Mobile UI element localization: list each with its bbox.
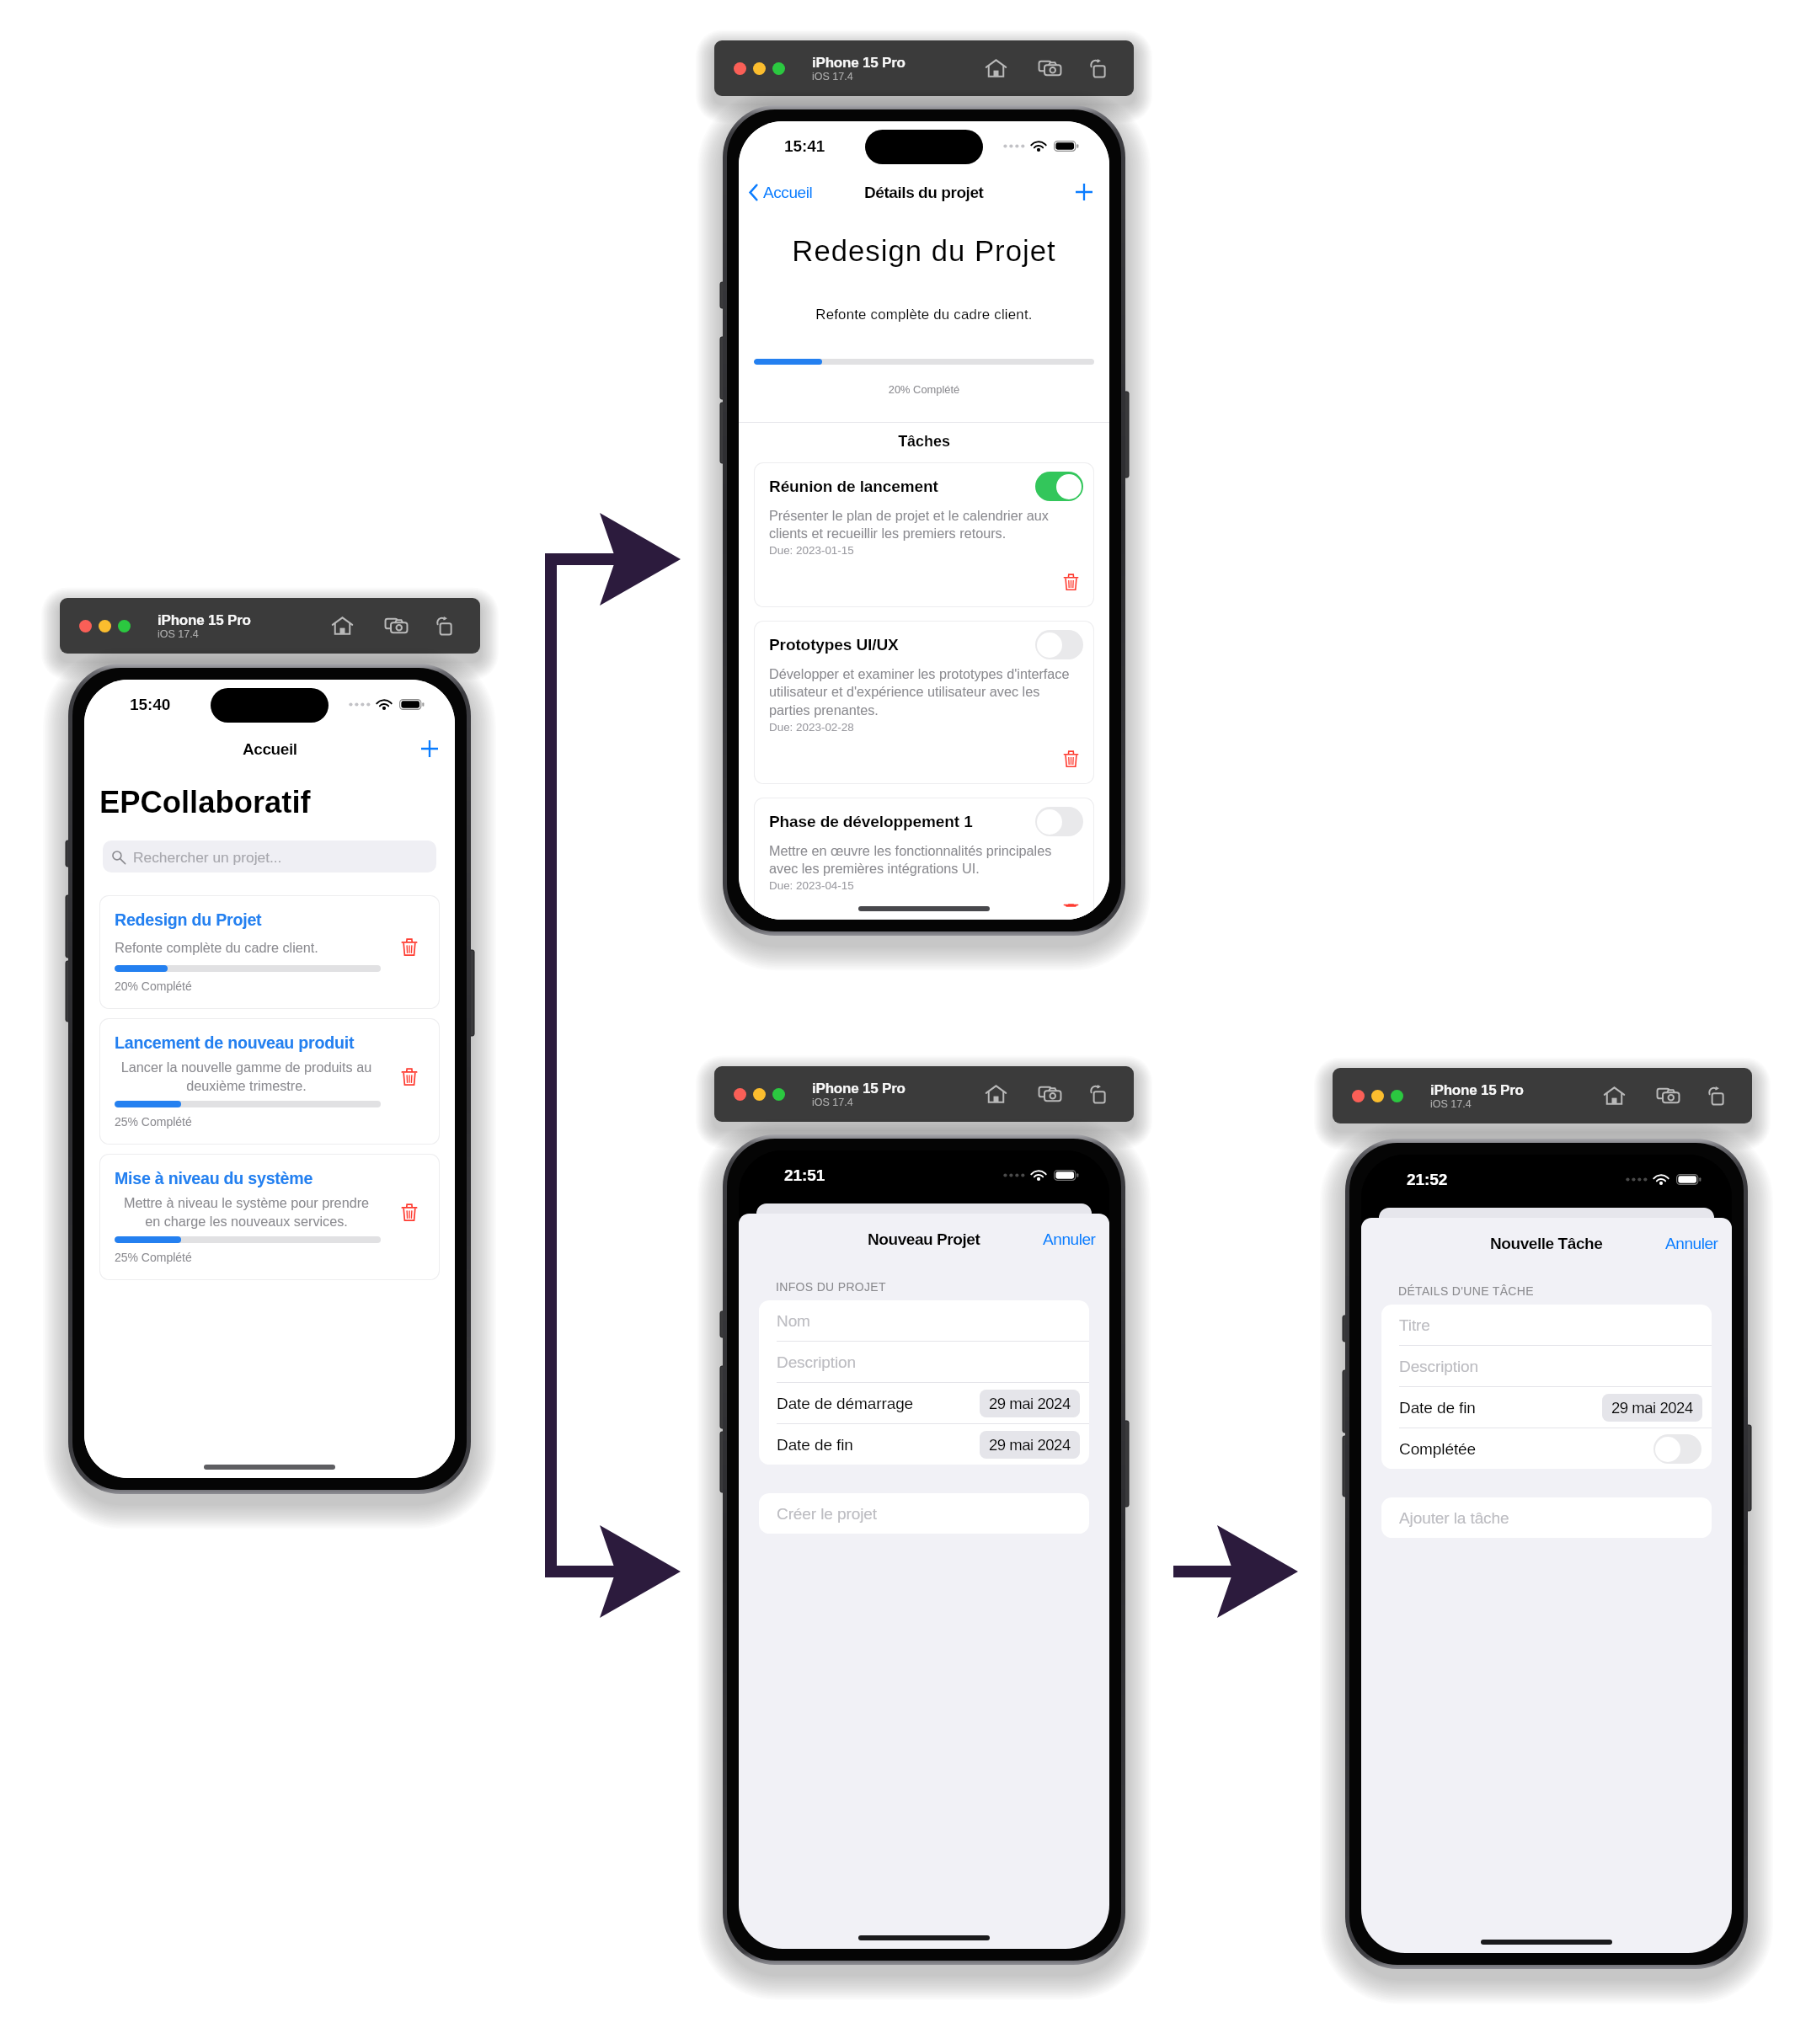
staticText: Présenter le plan de projet et le calend… <box>769 508 1083 542</box>
button[interactable]: 29 mai 2024 <box>980 1431 1080 1459</box>
button[interactable]: Capture d'écran <box>379 609 413 643</box>
button[interactable]: Supprimer la tâche <box>1059 569 1083 594</box>
staticText: iOS 17.4 <box>812 1097 853 1108</box>
button[interactable]: Rechercher un projet... <box>103 841 436 873</box>
staticText: Description <box>1399 1358 1478 1375</box>
button[interactable]: Ajouter une tâche <box>1070 178 1098 206</box>
button[interactable]: Rotation <box>428 609 462 643</box>
button[interactable]: Capture d'écran <box>1033 1077 1066 1111</box>
staticText: Mise à niveau du système <box>115 1169 313 1187</box>
staticText: iOS 17.4 <box>158 628 199 640</box>
staticText: Nouvelle Tâche <box>1490 1235 1603 1252</box>
button[interactable]: Accueil appareil <box>325 609 359 643</box>
staticText: Nouveau Projet <box>868 1230 980 1248</box>
staticText: 21:51 <box>784 1166 825 1184</box>
button[interactable]: Supprimer la tâche <box>1059 746 1083 771</box>
button[interactable]: Supprimer le projet <box>398 1202 419 1223</box>
staticText: Mettre à niveau le système pour prendre … <box>115 1195 378 1229</box>
staticText: Date de démarrage <box>777 1395 914 1412</box>
button[interactable]: Titre <box>1381 1305 1712 1345</box>
staticText: DÉTAILS D'UNE TÂCHE <box>1398 1284 1534 1298</box>
button[interactable]: Phase de développement 1 <box>754 798 1094 920</box>
button[interactable]: Rotation <box>1082 1077 1115 1111</box>
button[interactable]: 29 mai 2024 <box>980 1390 1080 1417</box>
staticText: 29 mai 2024 <box>989 1436 1071 1454</box>
button[interactable]: Accueil appareil <box>979 1077 1012 1111</box>
button[interactable]: Ajouter la tâche <box>1381 1497 1712 1538</box>
staticText: 20% Complété <box>115 979 192 993</box>
staticText: iOS 17.4 <box>1430 1098 1472 1110</box>
staticText: EPCollaboratif <box>99 785 311 819</box>
button[interactable]: Description <box>759 1342 1089 1382</box>
button[interactable]: Annuler <box>1652 1230 1732 1257</box>
staticText: iPhone 15 Pro <box>158 612 251 628</box>
staticText: 15:41 <box>784 137 825 155</box>
staticText: Rechercher un projet... <box>133 849 282 865</box>
button[interactable]: Capture d'écran <box>1651 1079 1685 1113</box>
staticText: Lancement de nouveau produit <box>115 1033 355 1052</box>
button[interactable]: Créer le projet <box>759 1493 1089 1534</box>
staticText: 25% Complété <box>115 1115 192 1129</box>
button[interactable]: Accueil appareil <box>1597 1079 1631 1113</box>
staticText: Date de fin <box>1399 1399 1476 1417</box>
button[interactable]: Terminée <box>1035 807 1083 836</box>
staticText: Due: 2023-04-15 <box>769 879 854 892</box>
staticText: Phase de développement 1 <box>769 813 1035 830</box>
staticText: Due: 2023-02-28 <box>769 721 854 734</box>
button[interactable]: Ajouter un projet <box>415 734 444 763</box>
staticText: iOS 17.4 <box>812 71 853 83</box>
button[interactable]: Terminée <box>1035 472 1083 501</box>
staticText: Complétée <box>1399 1440 1477 1458</box>
button[interactable]: Terminée <box>1035 630 1083 659</box>
button[interactable]: Lancement de nouveau produit <box>99 1018 440 1145</box>
staticText: 21:52 <box>1407 1171 1448 1188</box>
staticText: Accueil <box>763 184 813 201</box>
staticText: Mettre en œuvre les fonctionnalités prin… <box>769 843 1083 877</box>
staticText: Titre <box>1399 1316 1430 1334</box>
button[interactable]: Prototypes UI/UX <box>754 621 1094 784</box>
staticText: Annuler <box>1043 1230 1096 1248</box>
staticText: Redesign du Projet <box>115 910 262 929</box>
button[interactable]: Rotation <box>1700 1079 1734 1113</box>
staticText: 20% Complété <box>739 383 1109 395</box>
staticText: Nom <box>777 1312 810 1330</box>
staticText: Date de fin <box>777 1436 853 1454</box>
button[interactable]: Nom <box>759 1300 1089 1341</box>
button[interactable]: Annuler <box>1029 1225 1109 1253</box>
staticText: iPhone 15 Pro <box>812 55 905 71</box>
button[interactable]: Supprimer le projet <box>398 1066 419 1087</box>
button[interactable]: Mise à niveau du système <box>99 1154 440 1280</box>
button[interactable]: Supprimer le projet <box>398 937 419 958</box>
staticText: INFOS DU PROJET <box>776 1280 886 1294</box>
staticText: Due: 2023-01-15 <box>769 544 854 557</box>
staticText: Tâches <box>739 433 1109 450</box>
staticText: Redesign du Projet <box>739 235 1109 268</box>
button[interactable]: 29 mai 2024 <box>1602 1394 1702 1422</box>
button[interactable]: Réunion de lancement <box>754 462 1094 607</box>
button[interactable]: Supprimer la tâche <box>1059 905 1083 906</box>
button[interactable]: Accueil <box>739 179 820 206</box>
staticText: Développer et examiner les prototypes d'… <box>769 666 1083 718</box>
staticText: Détails du projet <box>864 184 984 201</box>
button[interactable]: Rotation <box>1082 51 1115 85</box>
staticText: Prototypes UI/UX <box>769 636 1035 654</box>
button[interactable]: Description <box>1381 1346 1712 1386</box>
staticText: Lancer la nouvelle gamme de produits au … <box>115 1059 378 1093</box>
staticText: Refonte complète du cadre client. <box>115 940 318 955</box>
button[interactable]: Accueil appareil <box>979 51 1012 85</box>
button[interactable]: Complétée <box>1653 1434 1701 1464</box>
staticText: iPhone 15 Pro <box>812 1081 905 1097</box>
button[interactable]: Capture d'écran <box>1033 51 1066 85</box>
staticText: 15:40 <box>130 696 171 713</box>
staticText: Ajouter la tâche <box>1399 1509 1509 1527</box>
staticText: iPhone 15 Pro <box>1430 1082 1524 1098</box>
staticText: Annuler <box>1665 1235 1718 1252</box>
staticText: 29 mai 2024 <box>989 1395 1071 1412</box>
staticText: Créer le projet <box>777 1505 877 1523</box>
staticText: Description <box>777 1353 856 1371</box>
staticText: Accueil <box>243 740 297 758</box>
button[interactable]: Redesign du Projet <box>99 895 440 1009</box>
staticText: Réunion de lancement <box>769 478 1035 495</box>
staticText: 29 mai 2024 <box>1611 1399 1693 1417</box>
staticText: 25% Complété <box>115 1251 192 1264</box>
